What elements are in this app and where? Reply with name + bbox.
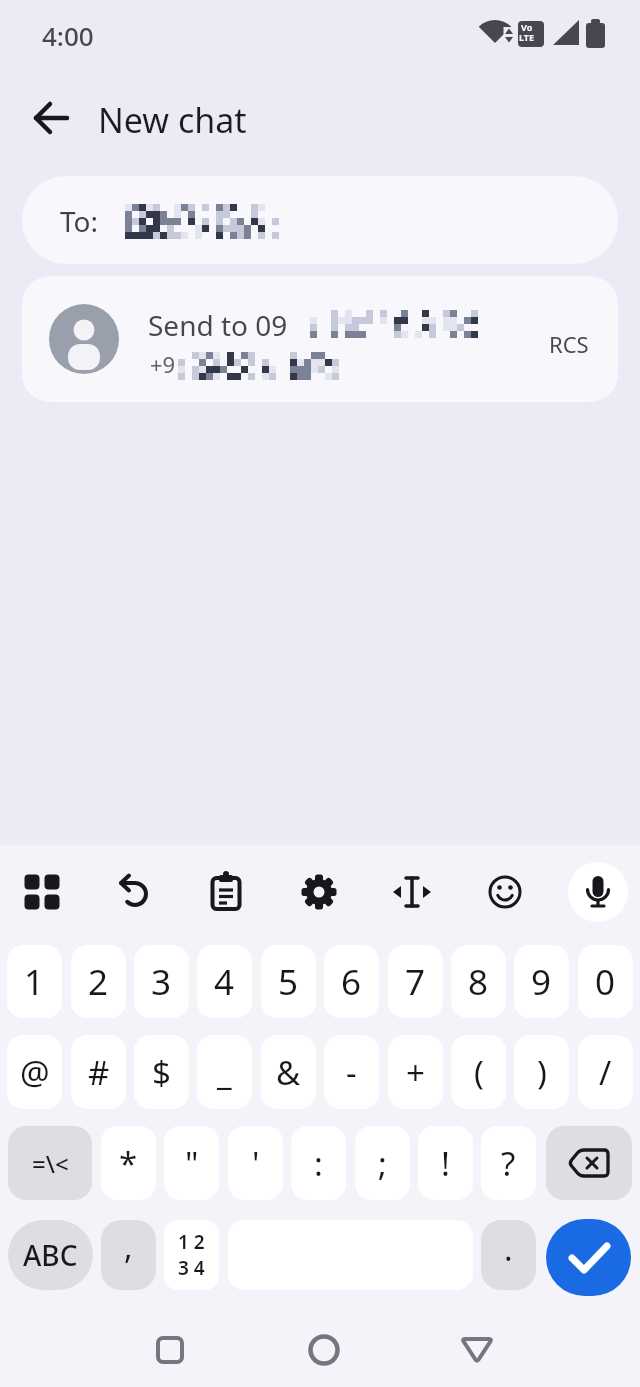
staticText: 4:00 [42, 18, 94, 53]
staticText: ( [474, 1050, 484, 1095]
staticText: 7 [405, 958, 426, 1006]
button[interactable]: & [261, 1035, 316, 1109]
button[interactable] [568, 862, 628, 922]
staticText: 9 [531, 958, 552, 1006]
staticText: / [599, 1050, 612, 1095]
button[interactable]: ; [355, 1126, 410, 1200]
staticText: ' [252, 1141, 260, 1186]
staticText: 3 4 [178, 1255, 205, 1281]
staticText: # [88, 1050, 110, 1095]
button[interactable] [298, 1324, 350, 1376]
staticText: ! [441, 1141, 450, 1186]
staticText: 6 [341, 958, 362, 1006]
staticText: 2 [88, 958, 109, 1006]
button[interactable]: Send to 09 [22, 276, 618, 402]
staticText: 3 [151, 958, 172, 1006]
button[interactable]: 9 [514, 945, 569, 1018]
staticText: 0 [595, 958, 616, 1006]
button[interactable]: / [578, 1035, 633, 1109]
button[interactable]: ( [451, 1035, 506, 1109]
button[interactable]: 3 [134, 945, 189, 1018]
staticText: ) [537, 1050, 547, 1095]
button[interactable] [200, 866, 252, 918]
button[interactable]: ? [481, 1126, 536, 1200]
button[interactable]: . [481, 1220, 536, 1290]
staticText: +9 [150, 349, 176, 379]
staticText: 1 [24, 958, 45, 1006]
button[interactable]: , [101, 1220, 156, 1290]
button[interactable] [479, 866, 531, 918]
staticText: New chat [98, 97, 247, 143]
staticText: ; [378, 1141, 387, 1186]
staticText: =\< [32, 1147, 69, 1180]
staticText: To: [60, 202, 99, 240]
button[interactable] [546, 1219, 631, 1296]
button[interactable]: " [164, 1126, 219, 1200]
button[interactable]: 7 [388, 945, 443, 1018]
staticText: 1 2 [178, 1229, 205, 1255]
staticText: 5 [278, 958, 299, 1006]
staticText: Vo [521, 21, 533, 33]
button[interactable]: 1 2 [164, 1220, 219, 1290]
staticText: _ [217, 1050, 232, 1095]
button[interactable]: 2 [71, 945, 126, 1018]
button[interactable]: =\< [8, 1126, 92, 1200]
button[interactable] [144, 1324, 196, 1376]
button[interactable] [386, 866, 438, 918]
staticText: , [124, 1225, 133, 1269]
staticText: & [276, 1050, 301, 1095]
button[interactable]: + [388, 1035, 443, 1109]
button[interactable]: 5 [261, 945, 316, 1018]
button[interactable] [546, 1126, 632, 1200]
staticText: . [504, 1227, 513, 1271]
button[interactable] [16, 866, 68, 918]
staticText: 8 [468, 958, 489, 1006]
button[interactable] [293, 866, 345, 918]
button[interactable] [24, 92, 80, 144]
staticText: @ [20, 1050, 50, 1095]
button[interactable]: ABC [8, 1220, 93, 1290]
button[interactable]: : [291, 1126, 346, 1200]
button[interactable]: $ [134, 1035, 189, 1109]
button[interactable]: # [71, 1035, 126, 1109]
button[interactable]: To: [22, 176, 618, 264]
button[interactable]: 8 [451, 945, 506, 1018]
staticText: + [406, 1050, 425, 1095]
button[interactable]: _ [197, 1035, 252, 1109]
button[interactable]: * [101, 1126, 156, 1200]
staticText: ABC [23, 1236, 78, 1274]
button[interactable]: @ [7, 1035, 62, 1109]
button[interactable]: 4 [197, 945, 252, 1018]
button[interactable]: 0 [578, 945, 633, 1018]
button[interactable]: - [324, 1035, 379, 1109]
button[interactable] [108, 866, 160, 918]
button[interactable] [451, 1324, 503, 1376]
staticText: : [314, 1141, 323, 1186]
staticText: " [185, 1141, 199, 1186]
staticText: * [119, 1141, 138, 1186]
staticText: 4 [214, 958, 235, 1006]
staticText: $ [152, 1050, 171, 1095]
staticText: Send to 09 [148, 306, 288, 344]
button[interactable]: 1 [7, 945, 62, 1018]
button[interactable]: ' [228, 1126, 283, 1200]
button[interactable]: ) [514, 1035, 569, 1109]
staticText: RCS [549, 329, 589, 359]
staticText: - [346, 1050, 357, 1095]
button[interactable]: ! [418, 1126, 473, 1200]
button[interactable]: 6 [324, 945, 379, 1018]
staticText: ? [501, 1141, 516, 1186]
staticText: LTE [519, 31, 535, 43]
